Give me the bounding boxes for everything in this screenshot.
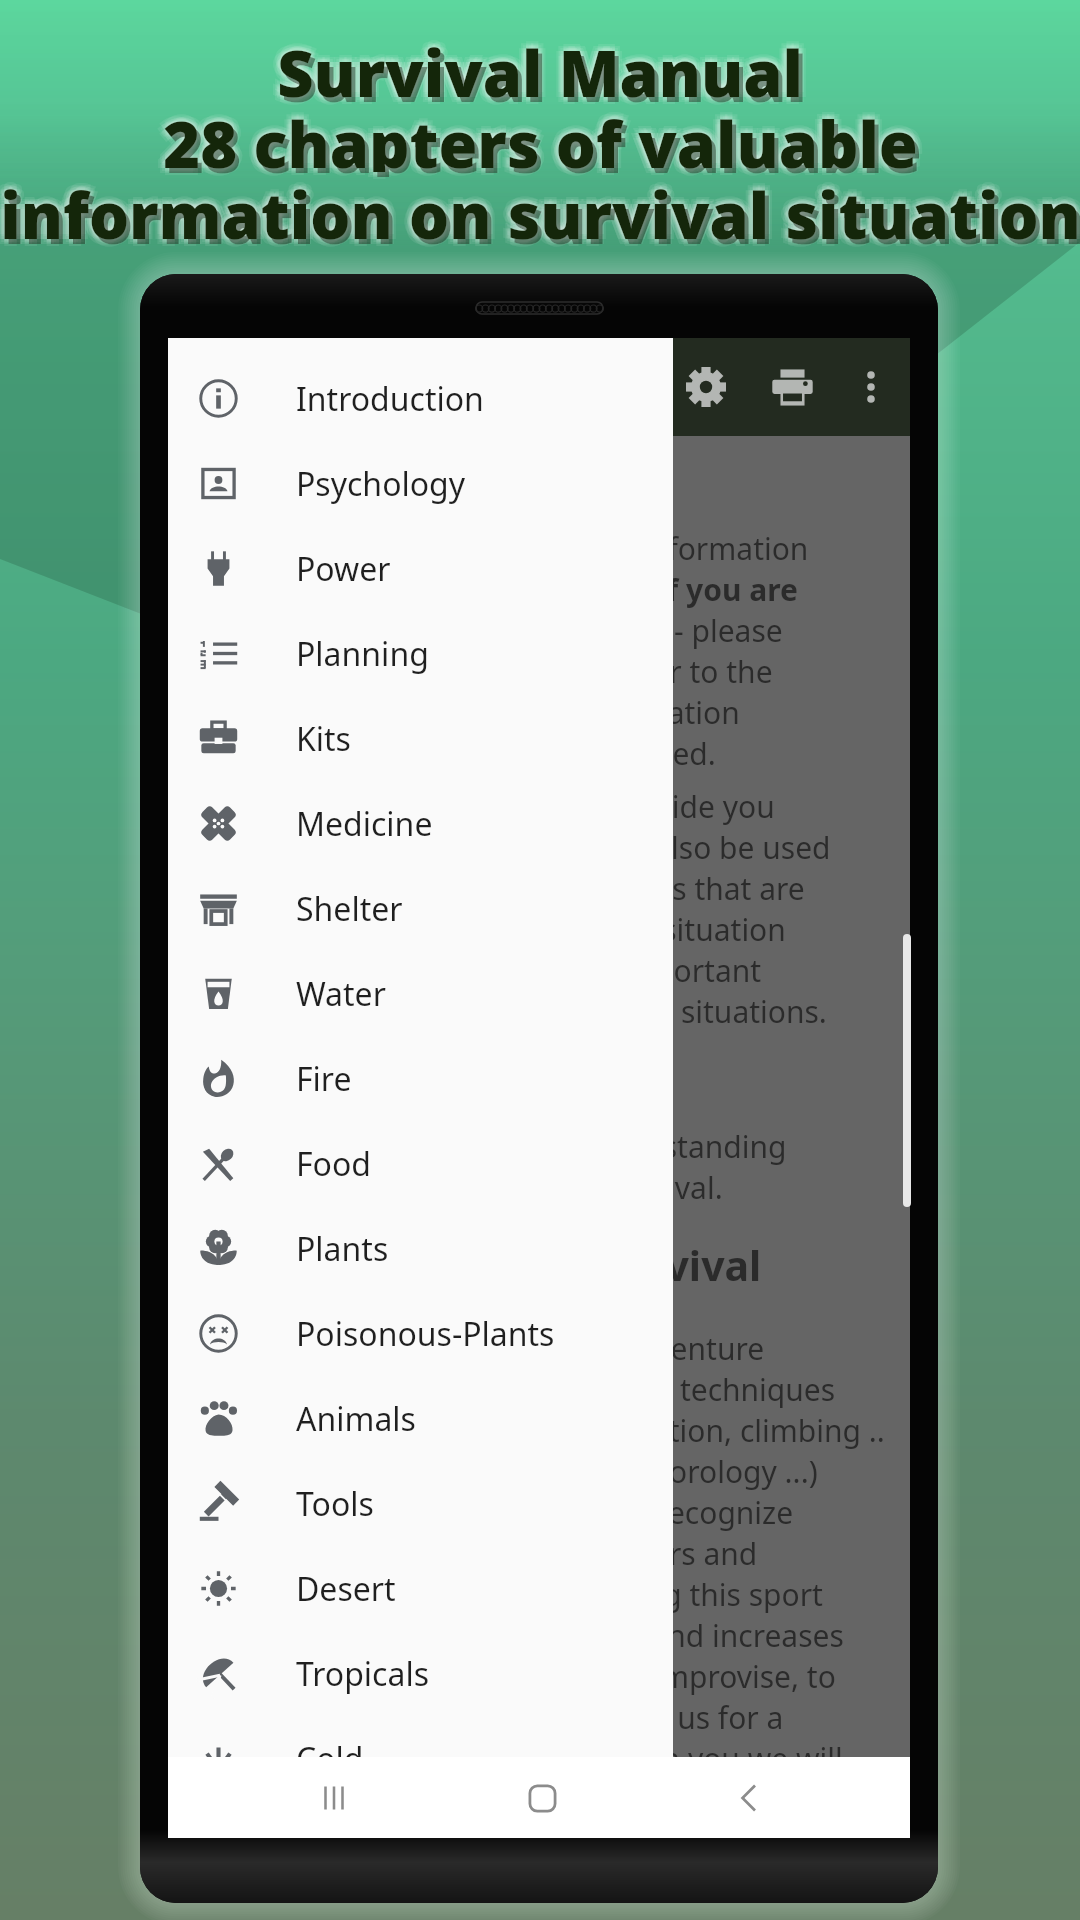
- staticText: 28 chapters of valuable: [163, 105, 918, 176]
- staticText: Survival Manual: [277, 28, 803, 99]
- staticText: 28 chapters of valuable: [168, 106, 923, 177]
- staticText: not really a part of a real survival sit…: [194, 909, 786, 950]
- staticText: that can be used save your life if you a…: [194, 569, 798, 610]
- staticText: will be the most seriously be needed.: [194, 733, 716, 774]
- button[interactable]: Tools: [168, 1461, 673, 1546]
- staticText: 28 chapters of valuable: [166, 104, 921, 175]
- button[interactable]: Introduction: [168, 356, 673, 441]
- button[interactable]: Recent apps: [297, 1761, 371, 1835]
- staticText: Psychology: [296, 462, 466, 506]
- staticText: Food: [296, 1142, 372, 1186]
- staticText: This survival manual will also provide y…: [194, 786, 775, 827]
- button[interactable]: Fire: [168, 1036, 673, 1121]
- button[interactable]: Poisonous-Plants: [168, 1291, 673, 1376]
- staticText: 28 chapters of valuable: [158, 106, 913, 177]
- staticText: Survival Manual: [272, 25, 798, 96]
- staticText: 28 chapters of valuable: [156, 101, 911, 172]
- staticText: and then to avoid all of the dangers and: [194, 1533, 758, 1574]
- staticText: Survival Manual: [274, 27, 800, 98]
- button[interactable]: Animals: [168, 1376, 673, 1461]
- button[interactable]: Kits: [168, 696, 673, 781]
- staticText: Survival Manual: [277, 37, 803, 108]
- staticText: Medicine: [296, 802, 433, 846]
- staticText: Survival Manual: [273, 30, 799, 101]
- button[interactable]: Desert: [168, 1546, 673, 1631]
- staticText: Survival Manual: [270, 30, 796, 101]
- button[interactable]: Cold: [168, 1716, 673, 1801]
- staticText: in a great number of the everyday situat…: [194, 991, 827, 1032]
- button[interactable]: Psychology: [168, 441, 673, 526]
- staticText: react and it also will well prepares us …: [194, 1697, 784, 1738]
- button[interactable]: Shelter: [168, 866, 673, 951]
- staticText: information on survival situation: [0, 179, 1080, 250]
- staticText: information on survival situation: [0, 168, 1080, 239]
- staticText: knowledge (botany, biology, meteorology …: [194, 1451, 818, 1492]
- staticText: information on survival situation: [0, 172, 1076, 243]
- staticText: Survival Manual: [277, 23, 803, 94]
- staticText: (orientation, route finding, navigation,…: [194, 1410, 884, 1451]
- staticText: Shelter: [296, 887, 403, 931]
- staticText: 28 chapters of valuable: [163, 99, 918, 170]
- staticText: information on survival situation: [2, 172, 1080, 243]
- staticText: Poisonous-Plants: [296, 1312, 555, 1356]
- button[interactable]: Print: [749, 344, 835, 430]
- staticText: information on survival situation: [0, 172, 1078, 243]
- staticText: information on survival situation: [0, 176, 1080, 247]
- staticText: Survival Manual: [277, 26, 803, 97]
- staticText: read it very carefully and well prior to…: [194, 651, 773, 692]
- staticText: 28 chapters of valuable: [163, 103, 918, 174]
- staticText: Survival Manual: [282, 25, 808, 96]
- staticText: information on survival situation: [0, 170, 1080, 241]
- staticText: Cold: [296, 1737, 364, 1781]
- staticText: Introduction: [296, 377, 484, 421]
- staticText: sport which always requires many techniq…: [194, 1369, 836, 1410]
- button[interactable]: Planning: [168, 611, 673, 696]
- button[interactable]: More options: [835, 351, 907, 423]
- staticText: information on survival situation: [4, 172, 1080, 243]
- staticText: Survival Manual: [284, 30, 810, 101]
- staticText: information on survival situation: [0, 175, 1077, 246]
- button[interactable]: Medicine: [168, 781, 673, 866]
- staticText: Survival Manual: [280, 33, 806, 104]
- staticText: Power: [296, 547, 391, 591]
- staticText: information on survival situation: [0, 177, 1075, 248]
- staticText: are the essential true keys to survival.: [194, 1167, 723, 1208]
- staticText: Plants: [296, 1227, 389, 1271]
- staticText: Water: [296, 972, 386, 1016]
- staticText: information on survival situation: [0, 167, 1075, 238]
- staticText: Tropicals: [296, 1652, 429, 1696]
- button[interactable]: Plants: [168, 1206, 673, 1291]
- staticText: information on survival situation: [7, 172, 1080, 243]
- staticText: Survival Manual: [279, 30, 805, 101]
- staticText: with useful information that can also be…: [194, 827, 831, 868]
- staticText: Survival Manual: [274, 33, 800, 104]
- staticText: information on survival situation: [0, 169, 1077, 240]
- staticText: information on survival situation: [5, 177, 1080, 248]
- staticText: information on survival situation: [0, 172, 1080, 243]
- button[interactable]: Power: [168, 526, 673, 611]
- staticText: 28 chapters of valuable: [160, 104, 915, 175]
- staticText: information on survival situation: [3, 175, 1080, 246]
- staticText: possible difficult situation in which yo…: [194, 1738, 843, 1779]
- staticText: information on survival situation: [4, 177, 1080, 248]
- staticText: Fire: [296, 1057, 352, 1101]
- staticText: 28 chapters of valuable: [166, 98, 921, 169]
- button[interactable]: Back: [712, 1761, 786, 1835]
- button[interactable]: Tropicals: [168, 1631, 673, 1716]
- staticText: have to face in almost all circumstances…: [194, 1779, 820, 1820]
- button[interactable]: Home: [505, 1761, 579, 1835]
- staticText: 28 chapters of valuable: [161, 101, 916, 172]
- staticText: moment in which this vital information: [194, 692, 740, 733]
- staticText: and also the ability to quickly try reco…: [194, 1492, 794, 1533]
- button[interactable]: Food: [168, 1121, 673, 1206]
- button[interactable]: Settings: [663, 344, 749, 430]
- staticText: Planning: [296, 632, 429, 676]
- staticText: 28 chapters of valuable: [167, 106, 922, 177]
- button[interactable]: Water: [168, 951, 673, 1036]
- staticText: information on survival situation: [0, 174, 1080, 245]
- staticText: 28 chapters of valuable: [168, 96, 923, 167]
- staticText: ever caught in a survival situation - pl…: [194, 610, 783, 651]
- staticText: 28 chapters of valuable: [158, 96, 913, 167]
- staticText: Animals: [296, 1397, 416, 1441]
- staticText: Survival Manual: [282, 35, 808, 106]
